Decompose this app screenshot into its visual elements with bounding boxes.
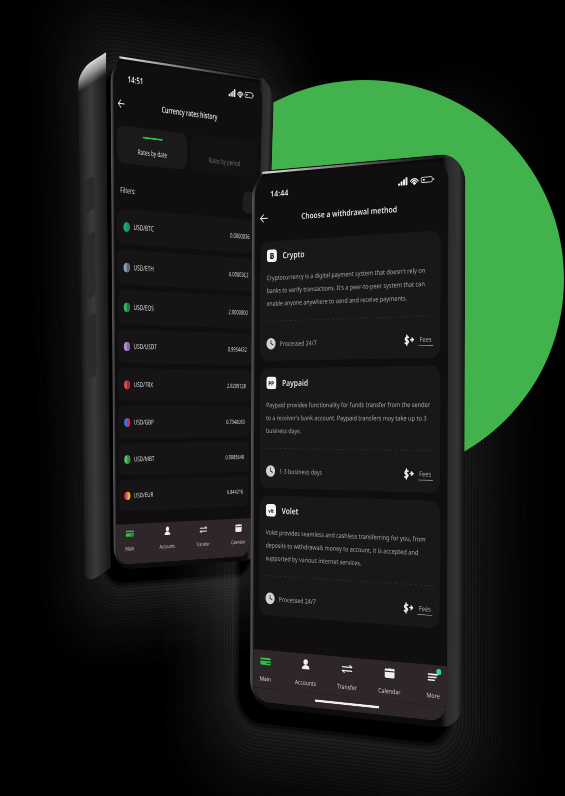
button[interactable]: More	[319, 755, 365, 796]
staticText: Volet	[61, 521, 94, 539]
staticText: Cryptocurrency is a digital payment syst…	[30, 161, 340, 215]
staticText: USD/EOS	[52, 377, 102, 393]
staticText: 0.0000036	[291, 250, 342, 264]
staticText: USD/ETH	[52, 313, 101, 329]
staticText: 0.844216	[297, 698, 342, 712]
staticText: Choose a withdrawal method	[97, 67, 276, 84]
staticText: 2.0000000	[291, 378, 342, 392]
staticText: 1-3 business days	[56, 462, 139, 476]
staticText: USD/GBP	[52, 569, 103, 585]
button[interactable]: USD/ETH	[13, 293, 357, 349]
button[interactable]: Ƀ	[17, 111, 353, 298]
button[interactable]: USD/BTC	[13, 229, 357, 285]
staticText: Currency rates history	[118, 63, 254, 80]
button[interactable]: Calendar	[308, 763, 354, 796]
button[interactable]: Filters	[321, 183, 357, 219]
button[interactable]: Rates by date	[13, 103, 180, 160]
button[interactable]: vlt	[17, 507, 353, 694]
button[interactable]: Calendar	[241, 755, 287, 796]
button[interactable]: USD/EUR	[13, 677, 357, 733]
button[interactable]: PP	[17, 309, 353, 496]
staticText: USD/BTC	[52, 249, 101, 265]
staticText: Fees	[316, 263, 338, 277]
button[interactable]: USD/GBP	[13, 549, 357, 605]
button[interactable]: USD/TRX	[13, 485, 357, 541]
staticText: Rates by period	[233, 132, 314, 147]
staticText: Fees	[316, 461, 338, 475]
staticText: Crypto	[61, 125, 104, 143]
button[interactable]: USD/MBT	[13, 613, 357, 669]
button[interactable]: Rates by period	[189, 103, 357, 160]
staticText: USD/USDT	[52, 441, 109, 457]
button[interactable]: USD/USDT	[13, 421, 357, 477]
staticText: Processed 24/7	[56, 264, 128, 278]
staticText: Paypaid provides functionality for funds…	[30, 359, 340, 413]
staticText: USD/TRX	[52, 505, 100, 521]
staticText: Volet provides seamless and cashless tra…	[30, 557, 340, 611]
button[interactable]: USD/EOS	[13, 357, 357, 413]
staticText: 2.8209128	[291, 506, 342, 520]
staticText: Paypaid	[61, 323, 112, 341]
staticText: Rates by date	[62, 132, 132, 147]
